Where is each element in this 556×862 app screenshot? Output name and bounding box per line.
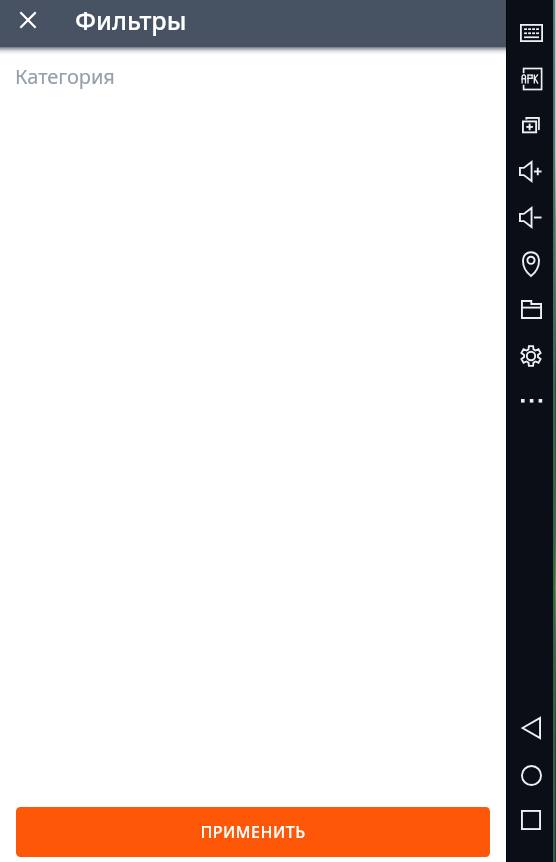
button[interactable]: Install APK (512, 60, 550, 98)
staticText: ПРИМЕНИТЬ (200, 821, 306, 843)
button[interactable]: Folder (512, 290, 550, 328)
button[interactable]: Home (512, 756, 550, 794)
button[interactable]: Add window (512, 106, 550, 144)
staticText: Категория (15, 63, 115, 90)
button[interactable]: Back (512, 709, 550, 747)
button[interactable]: Location (512, 245, 550, 283)
button[interactable]: More options (512, 382, 550, 420)
button[interactable]: Close (8, 0, 48, 40)
button[interactable]: Категория (0, 55, 506, 91)
button[interactable]: Show keyboard (512, 14, 550, 52)
button[interactable]: Recent apps (512, 801, 550, 839)
staticText: Фильтры (75, 3, 187, 37)
button[interactable]: Settings (512, 337, 550, 375)
button[interactable]: Volume up (512, 152, 550, 190)
button[interactable]: ПРИМЕНИТЬ (16, 807, 490, 857)
button[interactable]: Volume down (512, 198, 550, 236)
